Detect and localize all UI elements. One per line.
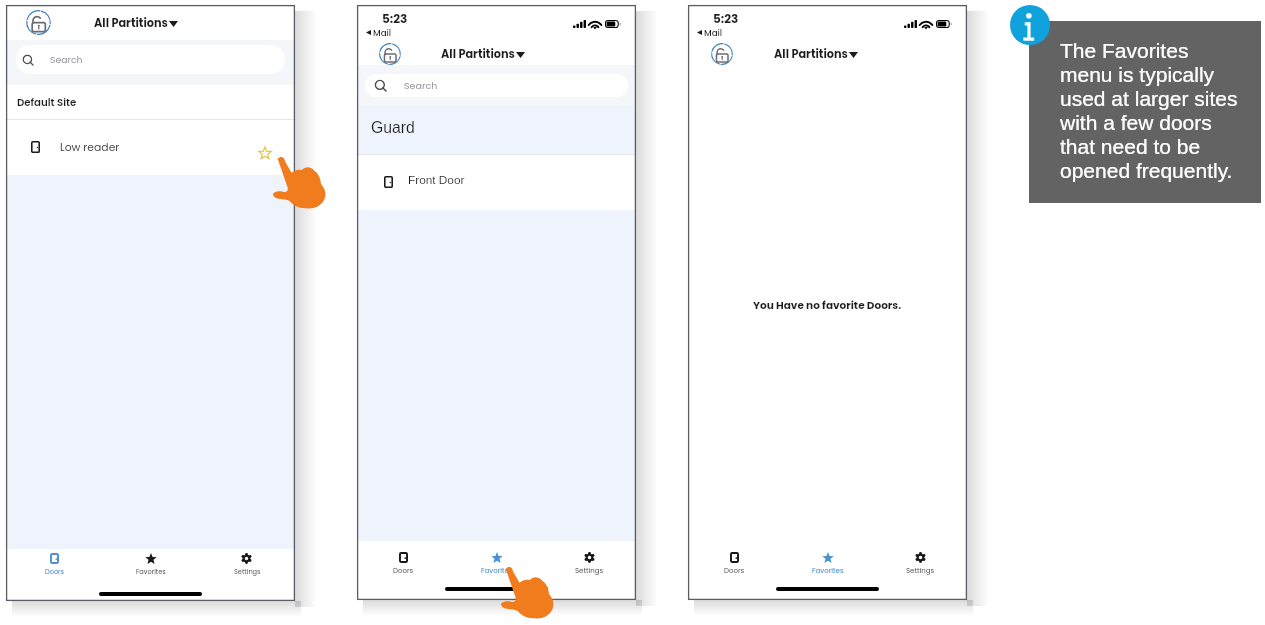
staticText: Settings [906, 566, 935, 576]
staticText: Low reader [60, 140, 120, 155]
button[interactable]: Add to favorites [258, 146, 272, 160]
staticText: All Partitions [441, 46, 515, 62]
staticText: All Partitions [774, 46, 848, 62]
button[interactable]: Settings [199, 553, 295, 576]
staticText: 5:23 [713, 10, 739, 27]
staticText: Mail [373, 27, 392, 39]
button[interactable]: Unlock partition [26, 10, 51, 35]
button[interactable]: Favorites [103, 553, 199, 576]
button[interactable]: Unlock partition [711, 43, 735, 65]
staticText: Doors [393, 566, 414, 576]
staticText: The Favorites menu is typically used at … [1060, 39, 1244, 182]
button[interactable]: Doors [6, 553, 103, 576]
button[interactable]: Settings [543, 552, 636, 576]
staticText: Doors [45, 567, 65, 576]
staticText: Doors [724, 566, 745, 576]
button[interactable]: Information [1010, 5, 1050, 45]
staticText: Search [404, 79, 438, 92]
staticText: You Have no favorite Doors. [753, 298, 902, 313]
button[interactable]: Unlock partition [379, 43, 403, 65]
button[interactable]: Front Door [357, 154, 636, 210]
button[interactable]: Doors [688, 552, 781, 576]
staticText: Mail [704, 27, 723, 39]
staticText: Default Site [17, 95, 77, 109]
staticText: Settings [234, 567, 261, 576]
staticText: Guard [371, 119, 415, 137]
staticText: All Partitions [94, 15, 168, 31]
staticText: Favorites [812, 566, 844, 576]
button[interactable]: Favorites [781, 552, 874, 576]
staticText: Favorites [136, 567, 166, 576]
staticText: Favorites [481, 566, 513, 576]
button[interactable]: Settings [874, 552, 967, 576]
staticText: 5:23 [382, 10, 408, 27]
button[interactable]: All Partitions [774, 46, 858, 62]
button[interactable]: All Partitions [441, 46, 525, 62]
button[interactable]: Search [365, 74, 628, 97]
button[interactable]: Low reader [6, 119, 295, 175]
button[interactable]: All Partitions [94, 15, 178, 31]
staticText: Settings [575, 566, 604, 576]
button[interactable]: Favorites [450, 552, 543, 576]
button[interactable]: Search [16, 45, 285, 74]
staticText: Front Door [408, 173, 465, 186]
staticText: Search [50, 53, 83, 66]
button[interactable]: Doors [357, 552, 450, 576]
